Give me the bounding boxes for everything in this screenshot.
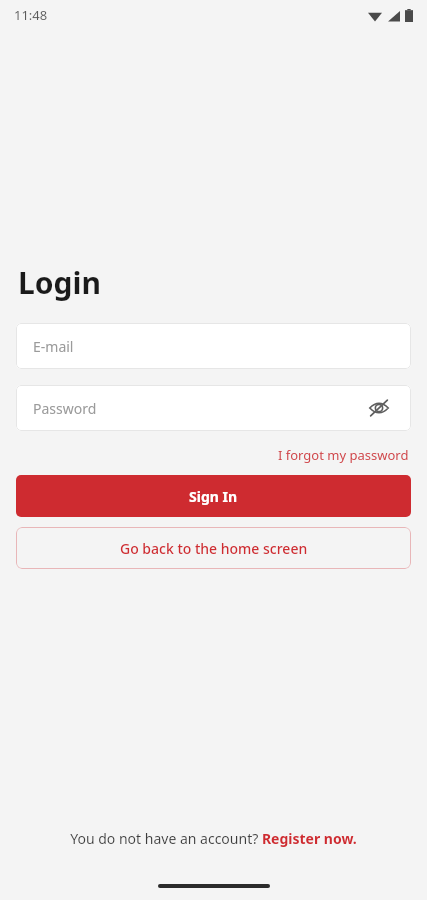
button[interactable]: Show password [364, 393, 394, 423]
button[interactable]: Sign In [16, 475, 411, 517]
staticText: 11:48 [14, 6, 48, 24]
staticText: Go back to the home screen [120, 539, 308, 558]
button[interactable]: Go back to the home screen [16, 527, 411, 569]
button[interactable]: E-mail [16, 323, 411, 369]
staticText: Login [18, 262, 101, 303]
staticText: I forgot my password [278, 446, 409, 464]
staticText: You do not have an account? Register now… [70, 829, 357, 848]
button[interactable]: I forgot my password [276, 443, 411, 467]
staticText: Password [33, 399, 97, 418]
staticText: E-mail [33, 337, 74, 356]
staticText: Sign In [189, 487, 238, 506]
button[interactable]: You do not have an account? Register now… [62, 825, 365, 852]
button[interactable]: Password [16, 385, 411, 431]
